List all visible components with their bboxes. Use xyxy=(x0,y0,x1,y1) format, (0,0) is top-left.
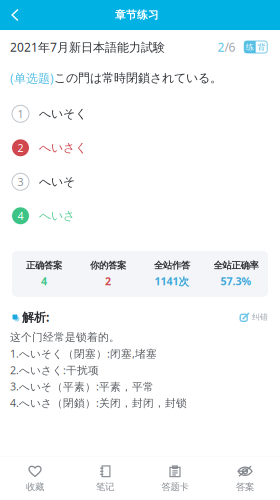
staticText: 正确答案 xyxy=(26,260,62,271)
button[interactable]: 练习模式切换 xyxy=(236,41,267,53)
staticText: 答案 xyxy=(236,481,254,493)
button[interactable]: 笔记 xyxy=(70,456,140,500)
staticText: 收藏 xyxy=(26,481,44,493)
staticText: 2 xyxy=(218,39,225,55)
staticText: 全站作答 xyxy=(154,260,190,271)
button[interactable]: 2 xyxy=(0,131,280,165)
button[interactable]: 3 xyxy=(0,165,280,199)
staticText: へいそく xyxy=(39,106,87,121)
button[interactable]: 收藏 xyxy=(0,456,70,500)
staticText: 练 xyxy=(246,42,254,52)
button[interactable]: 4 xyxy=(0,199,280,233)
staticText: 2 xyxy=(17,141,23,155)
staticText: へいさ xyxy=(39,208,75,223)
button[interactable]: 答案 xyxy=(210,456,280,500)
staticText: 2.へいさく:干扰项 xyxy=(10,363,99,377)
staticText: へいさく xyxy=(39,140,87,155)
staticText: 全站正确率 xyxy=(213,260,258,271)
staticText: 4.へいさ（閉鎖）:关闭，封闭，封锁 xyxy=(10,396,187,410)
staticText: 这个门经常是锁着的。 xyxy=(10,331,120,344)
button[interactable]: 纠错 xyxy=(240,312,268,322)
button[interactable]: Back xyxy=(0,0,28,30)
staticText: 57.3% xyxy=(220,274,251,288)
staticText: 2 xyxy=(105,274,111,288)
staticText: 解析: xyxy=(22,309,49,325)
staticText: (单选题) xyxy=(10,70,54,86)
staticText: 1 xyxy=(17,107,23,121)
button[interactable]: 1 xyxy=(0,97,280,131)
staticText: /6 xyxy=(225,39,236,55)
staticText: 章节练习 xyxy=(115,8,159,21)
button[interactable]: 答题卡 xyxy=(140,456,210,500)
staticText: 4 xyxy=(41,274,47,288)
staticText: 3.へいそ（平素）:平素，平常 xyxy=(10,379,154,393)
staticText: 纠错 xyxy=(252,312,268,322)
staticText: 答题卡 xyxy=(161,481,188,493)
staticText: 1141次 xyxy=(154,274,189,288)
staticText: 4 xyxy=(17,209,23,223)
staticText: 2021年7月新日本語能力試験 xyxy=(10,39,165,55)
staticText: 背 xyxy=(257,42,265,52)
staticText: 笔记 xyxy=(96,481,114,493)
staticText: へいそ xyxy=(39,174,75,189)
staticText: 你的答案 xyxy=(90,260,126,271)
staticText: 3 xyxy=(17,175,23,189)
staticText: この門は常時閉鎖されている。 xyxy=(54,71,222,85)
staticText: 1.へいそく（閉塞）:闭塞,堵塞 xyxy=(10,346,157,361)
